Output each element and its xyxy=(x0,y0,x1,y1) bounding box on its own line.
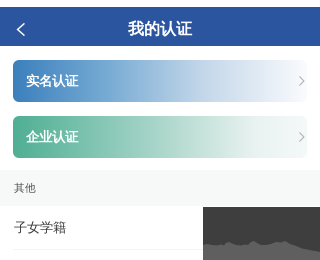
button[interactable]: 企业认证 xyxy=(13,116,307,158)
staticText: 实名认证 xyxy=(26,73,78,89)
staticText: 其他 xyxy=(14,181,36,194)
staticText: 子女学籍 xyxy=(14,219,66,236)
staticText: 企业认证 xyxy=(26,129,78,145)
button[interactable]: Back xyxy=(0,7,42,46)
button[interactable]: 实名认证 xyxy=(13,60,307,102)
staticText: 我的认证 xyxy=(128,19,192,39)
button[interactable]: 子女学籍 xyxy=(0,206,320,250)
